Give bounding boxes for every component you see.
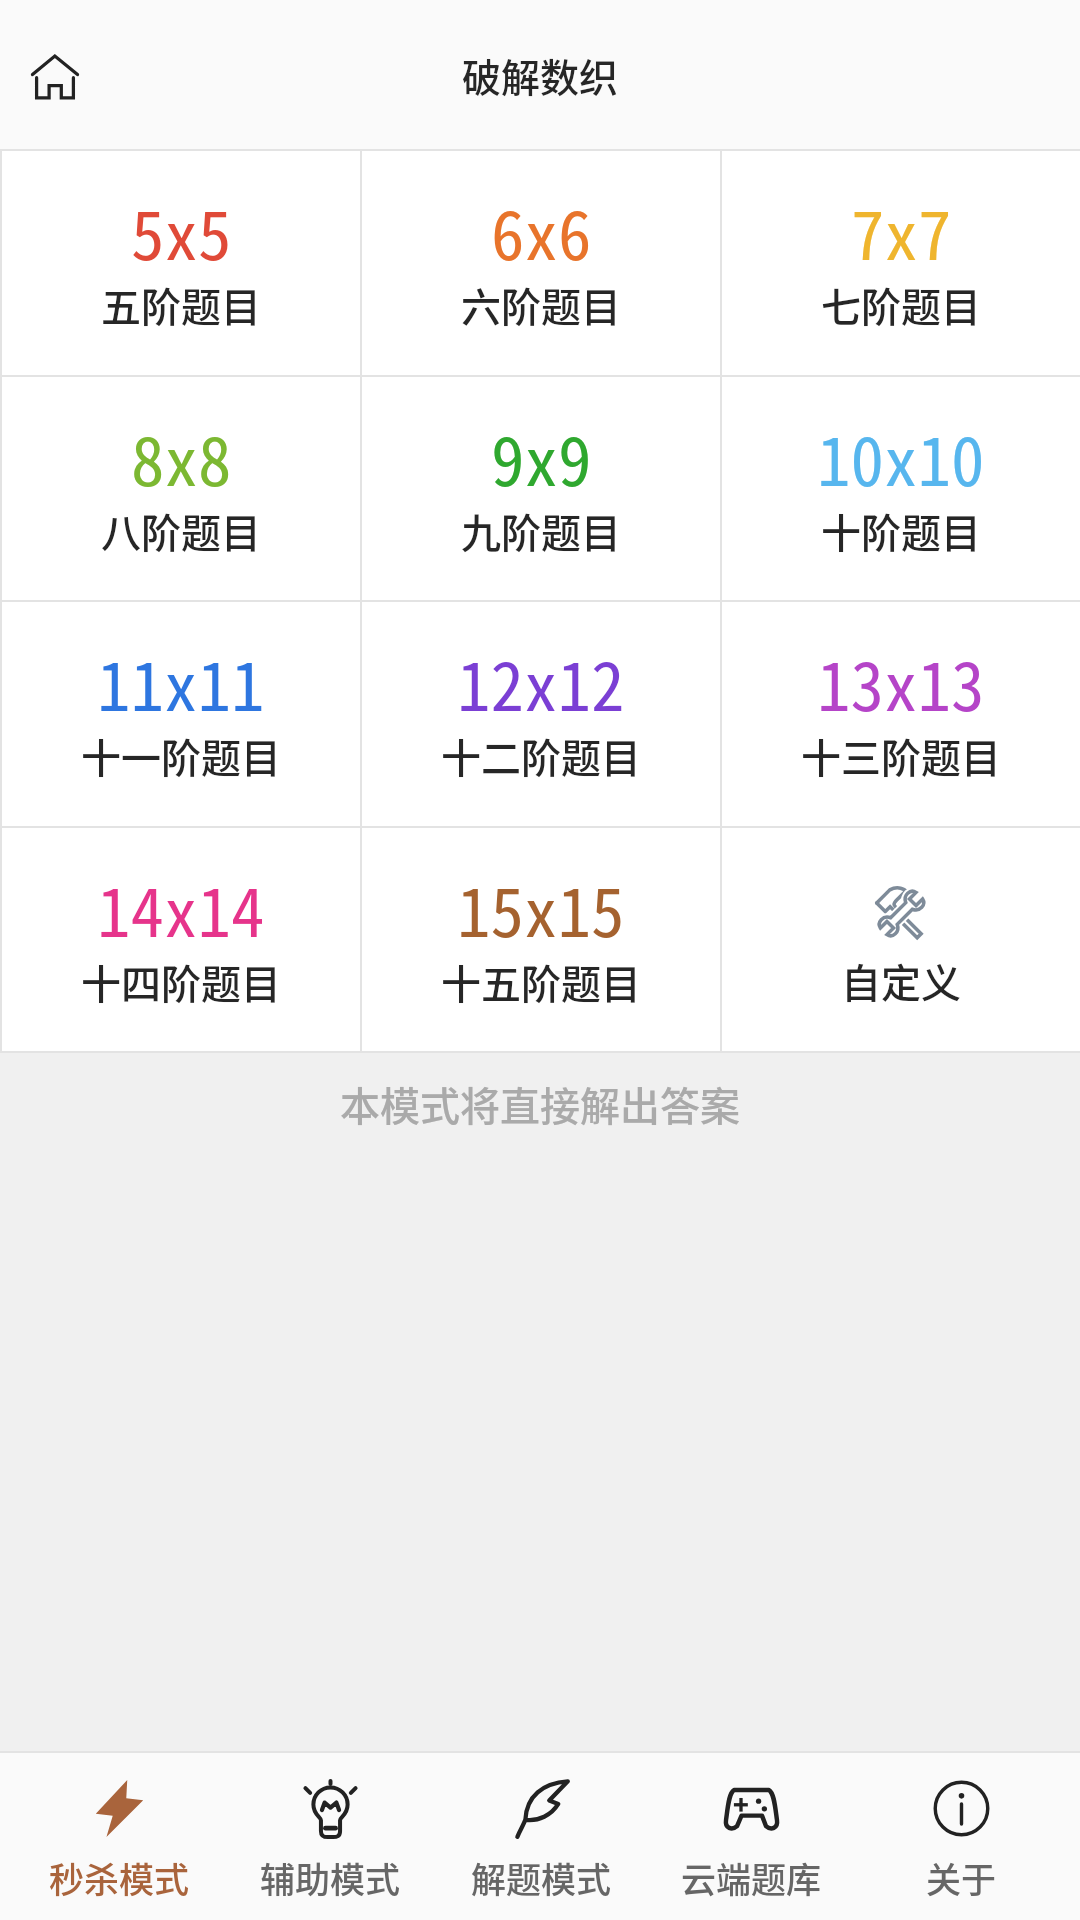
button[interactable]: 11x11 xyxy=(2,602,360,826)
staticText: 云端题库 xyxy=(681,1852,822,1903)
button[interactable]: 秒杀模式 xyxy=(14,1753,225,1920)
staticText: 关于 xyxy=(926,1852,997,1903)
staticText: 破解数织 xyxy=(462,47,619,103)
button[interactable]: 14x14 xyxy=(2,828,360,1051)
staticText: 十四阶题目 xyxy=(81,953,281,1011)
button[interactable]: 关于 xyxy=(856,1753,1066,1920)
staticText: 本模式将直接解出答案 xyxy=(0,1075,1080,1133)
button[interactable]: 自定义 xyxy=(722,828,1080,1051)
staticText: 6x6 xyxy=(491,182,592,279)
staticText: 9x9 xyxy=(491,408,592,505)
staticText: 10x10 xyxy=(817,408,985,505)
button[interactable]: 8x8 xyxy=(2,377,360,600)
button[interactable]: 5x5 xyxy=(2,151,360,375)
staticText: 辅助模式 xyxy=(260,1852,401,1903)
staticText: 九阶题目 xyxy=(461,502,621,560)
button[interactable]: Home xyxy=(4,26,105,127)
staticText: 十一阶题目 xyxy=(81,727,281,785)
staticText: 7x7 xyxy=(851,182,952,279)
staticText: 十五阶题目 xyxy=(441,953,641,1011)
staticText: 七阶题目 xyxy=(821,276,981,334)
staticText: 13x13 xyxy=(817,633,985,730)
button[interactable]: 辅助模式 xyxy=(225,1753,436,1920)
staticText: 自定义 xyxy=(841,952,961,1010)
staticText: 六阶题目 xyxy=(461,276,621,334)
staticText: 十二阶题目 xyxy=(441,727,641,785)
staticText: 5x5 xyxy=(131,182,232,279)
staticText: 15x15 xyxy=(457,859,625,956)
button[interactable]: 10x10 xyxy=(722,377,1080,600)
button[interactable]: 7x7 xyxy=(722,151,1080,375)
staticText: 十三阶题目 xyxy=(801,727,1001,785)
staticText: 14x14 xyxy=(97,859,265,956)
staticText: 十阶题目 xyxy=(821,502,981,560)
button[interactable]: 6x6 xyxy=(362,151,720,375)
staticText: 11x11 xyxy=(97,633,265,730)
staticText: 解题模式 xyxy=(471,1852,612,1903)
button[interactable]: 15x15 xyxy=(362,828,720,1051)
staticText: 五阶题目 xyxy=(101,276,261,334)
button[interactable]: 9x9 xyxy=(362,377,720,600)
button[interactable]: 云端题库 xyxy=(646,1753,856,1920)
button[interactable]: 12x12 xyxy=(362,602,720,826)
staticText: 秒杀模式 xyxy=(49,1852,190,1903)
staticText: 12x12 xyxy=(457,633,625,730)
staticText: 八阶题目 xyxy=(101,502,261,560)
staticText: 8x8 xyxy=(131,408,232,505)
button[interactable]: 13x13 xyxy=(722,602,1080,826)
button[interactable]: 解题模式 xyxy=(436,1753,646,1920)
